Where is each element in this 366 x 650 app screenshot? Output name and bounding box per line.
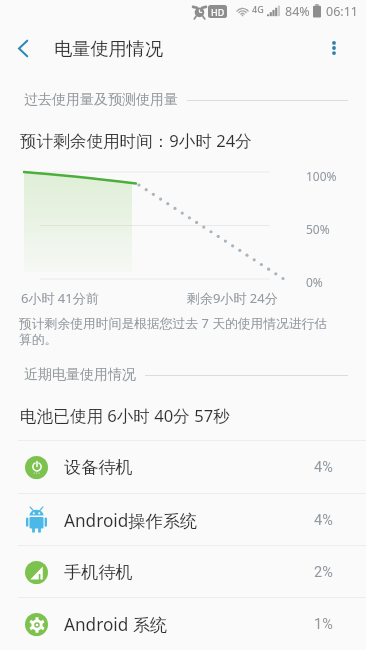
staticText: 设备待机 (64, 456, 133, 478)
staticText: 剩余9小时 24分 (187, 289, 278, 307)
staticText: 0% (306, 274, 323, 290)
button[interactable]: More options (317, 24, 351, 72)
staticText: 2% (314, 564, 333, 581)
staticText: 预计剩余使用时间：9小时 24分 (20, 129, 252, 152)
staticText: Android操作系统 (64, 509, 198, 532)
staticText: 6小时 41分前 (21, 289, 99, 307)
staticText: 50% (306, 221, 330, 237)
button[interactable]: Android操作系统 (0, 494, 366, 546)
staticText: 100% (306, 168, 337, 184)
staticText: 4% (314, 512, 333, 529)
button[interactable]: Back (0, 24, 46, 72)
button[interactable]: Android 系统 (0, 598, 366, 650)
staticText: 4% (314, 459, 333, 476)
staticText: 过去使用量及预测使用量 (24, 91, 178, 109)
staticText: 84% (285, 3, 310, 20)
staticText: 1% (314, 616, 333, 633)
staticText: 06:11 (326, 3, 358, 20)
button[interactable]: 设备待机 (0, 441, 366, 493)
staticText: 电池已使用 6小时 40分 57秒 (20, 404, 230, 427)
staticText: Android 系统 (64, 613, 168, 636)
button[interactable]: 手机待机 (0, 546, 366, 598)
staticText: 手机待机 (64, 561, 133, 583)
staticText: 电量使用情况 (54, 37, 164, 60)
staticText: 4G (252, 3, 264, 15)
staticText: 预计剩余使用时间是根据您过去 7 天的使用情况进行估算的。 (19, 314, 337, 348)
staticText: 近期电量使用情况 (24, 366, 136, 384)
staticText: HD (211, 6, 225, 18)
